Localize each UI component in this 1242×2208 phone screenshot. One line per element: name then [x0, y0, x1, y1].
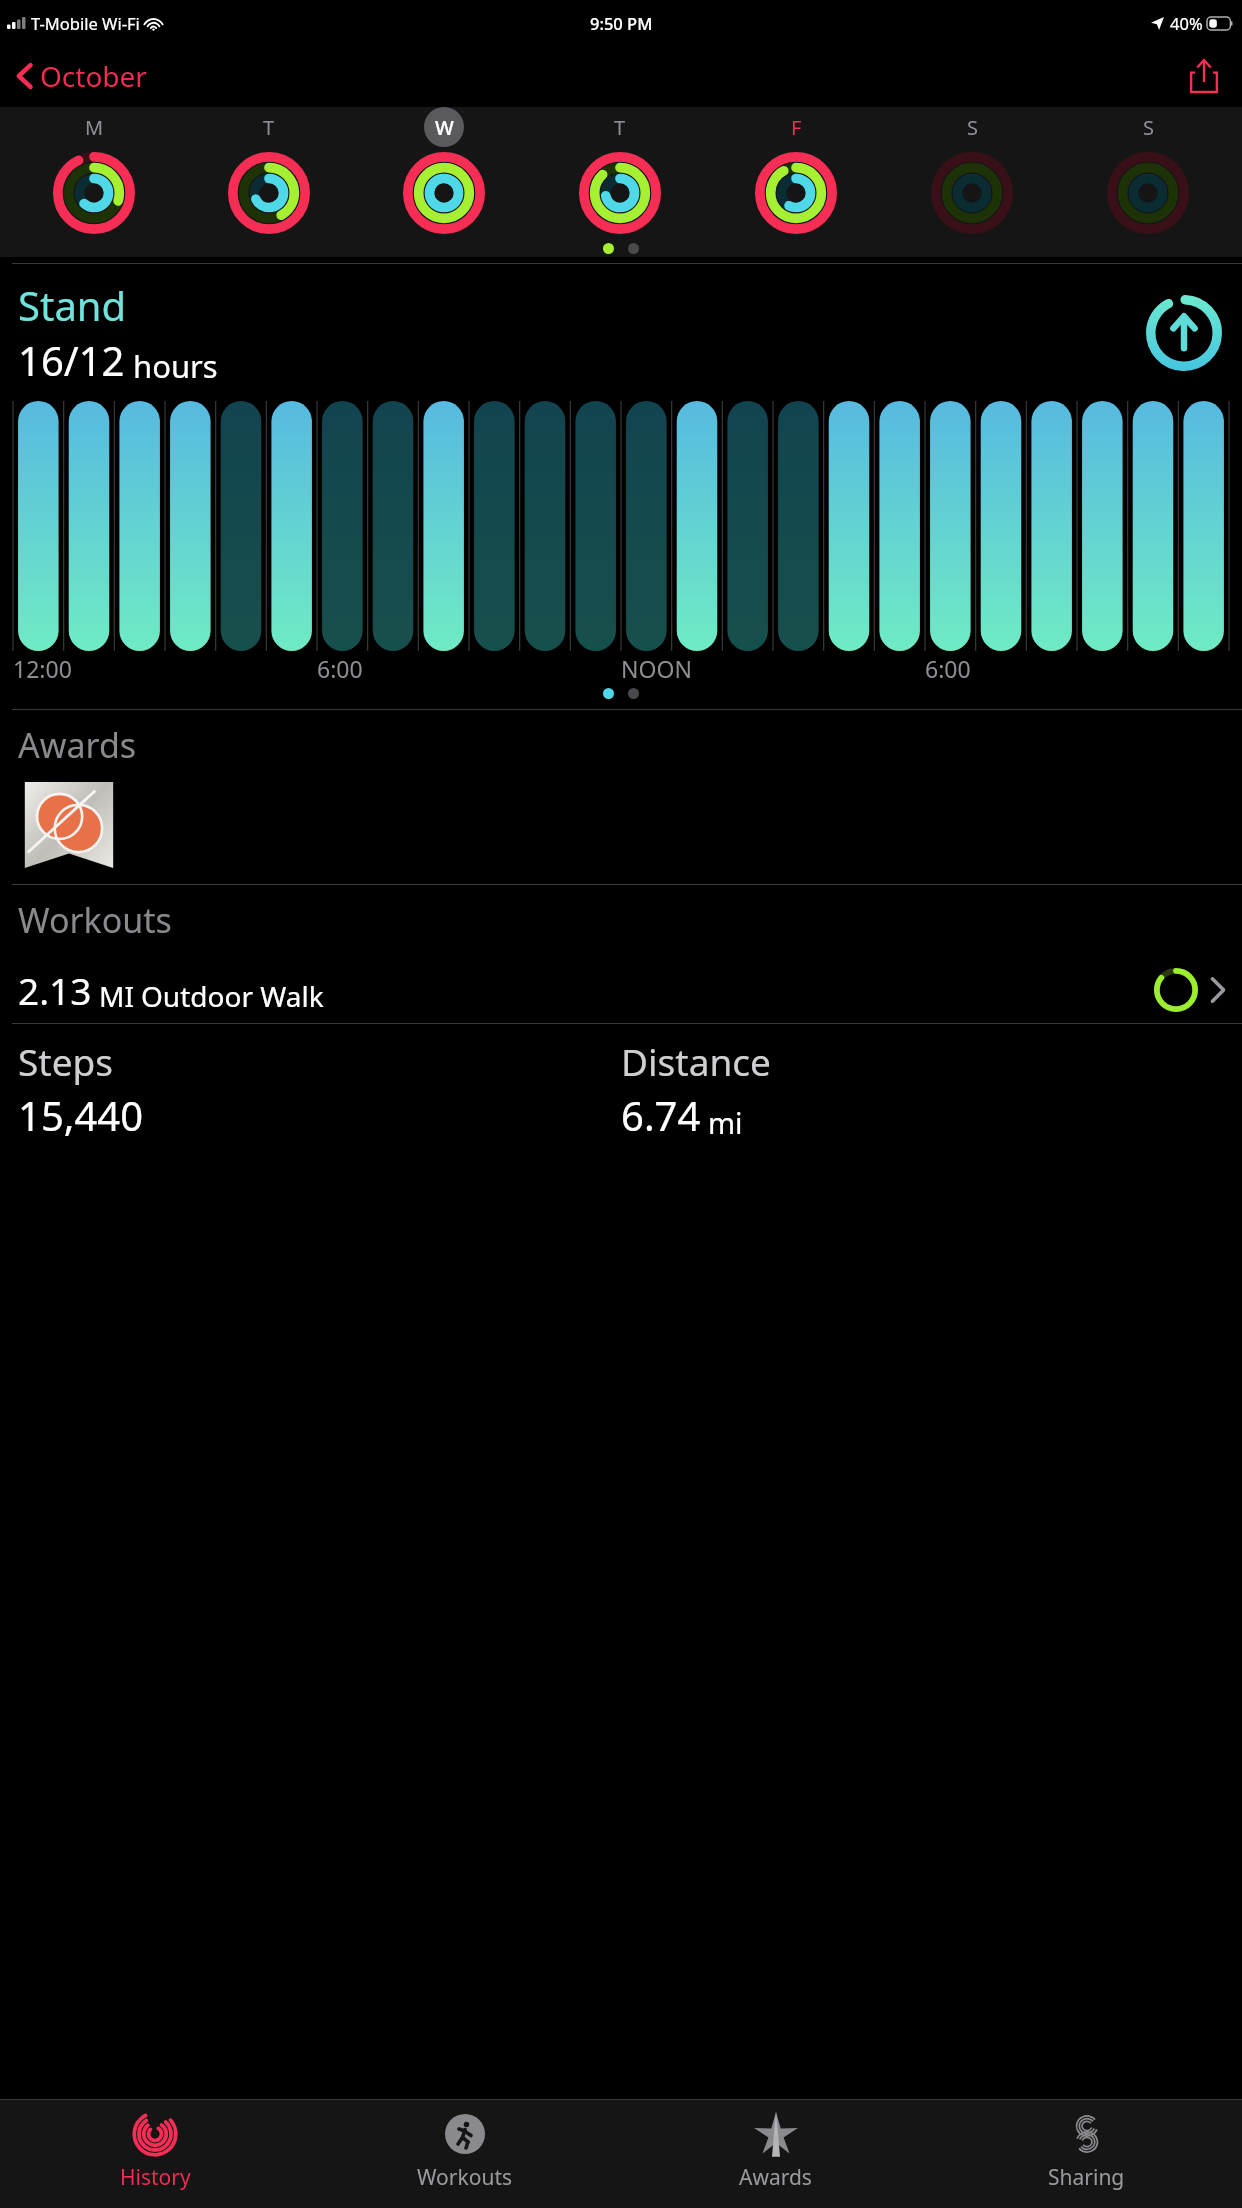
- staticText: Sharing: [1048, 2163, 1125, 2192]
- staticText: 15,440: [18, 1088, 144, 1142]
- staticText: History: [120, 2163, 191, 2192]
- button[interactable]: October: [13, 51, 151, 101]
- staticText: T-Mobile Wi-Fi: [31, 12, 140, 34]
- button[interactable]: Share Stand: [1146, 295, 1222, 371]
- button[interactable]: Sharing: [931, 2100, 1242, 2200]
- staticText: NOON: [621, 653, 692, 684]
- staticText: hours: [133, 345, 218, 387]
- staticText: 6.74: [621, 1088, 701, 1142]
- staticText: 6:00: [925, 653, 971, 684]
- button[interactable]: Award badge: [22, 782, 116, 868]
- button[interactable]: Stand: [0, 264, 1242, 709]
- staticText: S: [967, 114, 978, 141]
- button[interactable]: 2.13: [0, 961, 1242, 1023]
- staticText: S: [1143, 114, 1154, 141]
- button[interactable]: Share: [1182, 54, 1226, 98]
- staticText: F: [791, 114, 802, 141]
- staticText: W: [435, 114, 454, 141]
- staticText: Workouts: [18, 897, 172, 943]
- staticText: Awards: [739, 2163, 812, 2192]
- button[interactable]: Awards: [620, 2100, 931, 2200]
- staticText: October: [40, 57, 147, 95]
- staticText: 9:50 PM: [590, 12, 653, 34]
- staticText: Outdoor Walk: [141, 977, 324, 1015]
- button[interactable]: History: [0, 2100, 310, 2200]
- button[interactable]: Day 5 rings: [754, 151, 838, 235]
- button[interactable]: Day 2 rings: [227, 151, 311, 235]
- staticText: 16/12: [18, 333, 125, 387]
- staticText: 40%: [1170, 12, 1203, 34]
- button[interactable]: Day 6 rings: [930, 151, 1014, 235]
- staticText: Stand: [18, 278, 127, 332]
- button[interactable]: Day 7 rings: [1106, 151, 1190, 235]
- staticText: T: [614, 114, 626, 141]
- staticText: Workouts: [417, 2163, 513, 2192]
- staticText: Awards: [18, 722, 137, 768]
- button[interactable]: Workouts: [310, 2100, 620, 2200]
- staticText: T: [263, 114, 275, 141]
- staticText: MI: [99, 977, 134, 1015]
- staticText: mi: [708, 1103, 743, 1142]
- staticText: M: [85, 114, 104, 141]
- staticText: Steps: [18, 1036, 114, 1086]
- button[interactable]: Day 3 rings: [402, 151, 486, 235]
- button[interactable]: Day 1 rings: [52, 151, 136, 235]
- staticText: 12:00: [13, 653, 72, 684]
- button[interactable]: Day 4 rings: [578, 151, 662, 235]
- staticText: Distance: [621, 1036, 771, 1086]
- staticText: 6:00: [317, 653, 363, 684]
- staticText: 2.13: [18, 965, 92, 1015]
